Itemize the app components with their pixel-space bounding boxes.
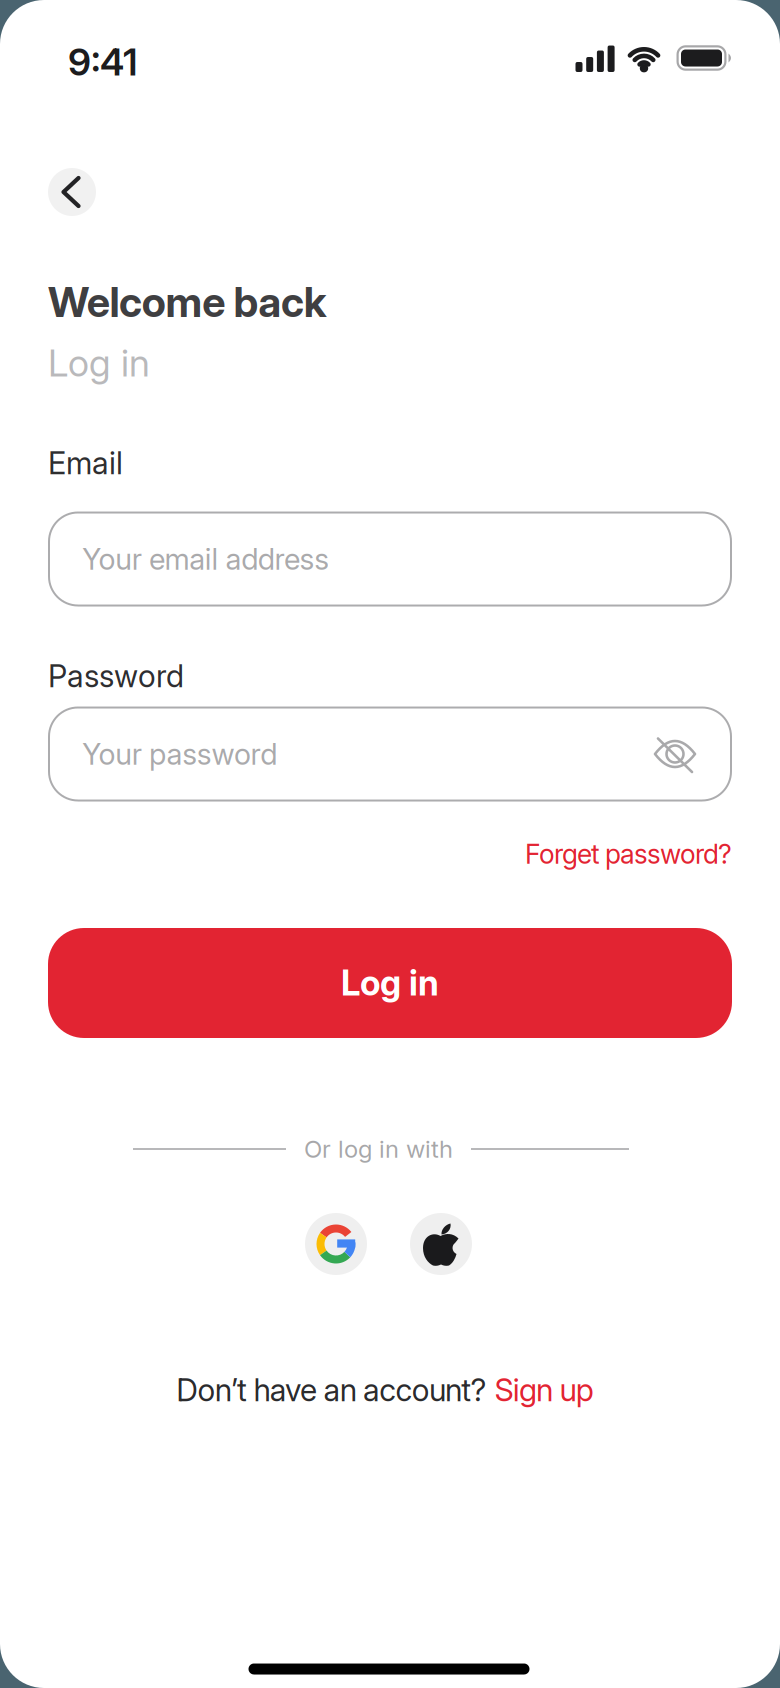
button[interactable]: Back bbox=[48, 168, 96, 216]
staticText: 9:41 bbox=[68, 40, 138, 84]
button[interactable]: Sign up bbox=[494, 1372, 594, 1408]
staticText: Email bbox=[48, 445, 123, 481]
button[interactable]: Log in with Apple bbox=[410, 1213, 472, 1275]
staticText: Your email address bbox=[82, 542, 329, 576]
staticText: Welcome back bbox=[48, 278, 327, 326]
staticText: Don’t have an account? bbox=[176, 1372, 486, 1408]
button[interactable]: Log in bbox=[48, 928, 732, 1038]
staticText: Log in bbox=[48, 341, 150, 385]
staticText: Sign up bbox=[494, 1372, 594, 1408]
staticText: Password bbox=[48, 658, 184, 694]
staticText: Or log in with bbox=[304, 1135, 453, 1163]
staticText: Log in bbox=[341, 963, 439, 1003]
button[interactable]: Forget password? bbox=[525, 838, 732, 870]
staticText: Forget password? bbox=[525, 838, 732, 870]
button[interactable]: Show password bbox=[653, 734, 697, 774]
staticText: Your password bbox=[82, 737, 277, 771]
button[interactable]: Log in with Google bbox=[305, 1213, 367, 1275]
